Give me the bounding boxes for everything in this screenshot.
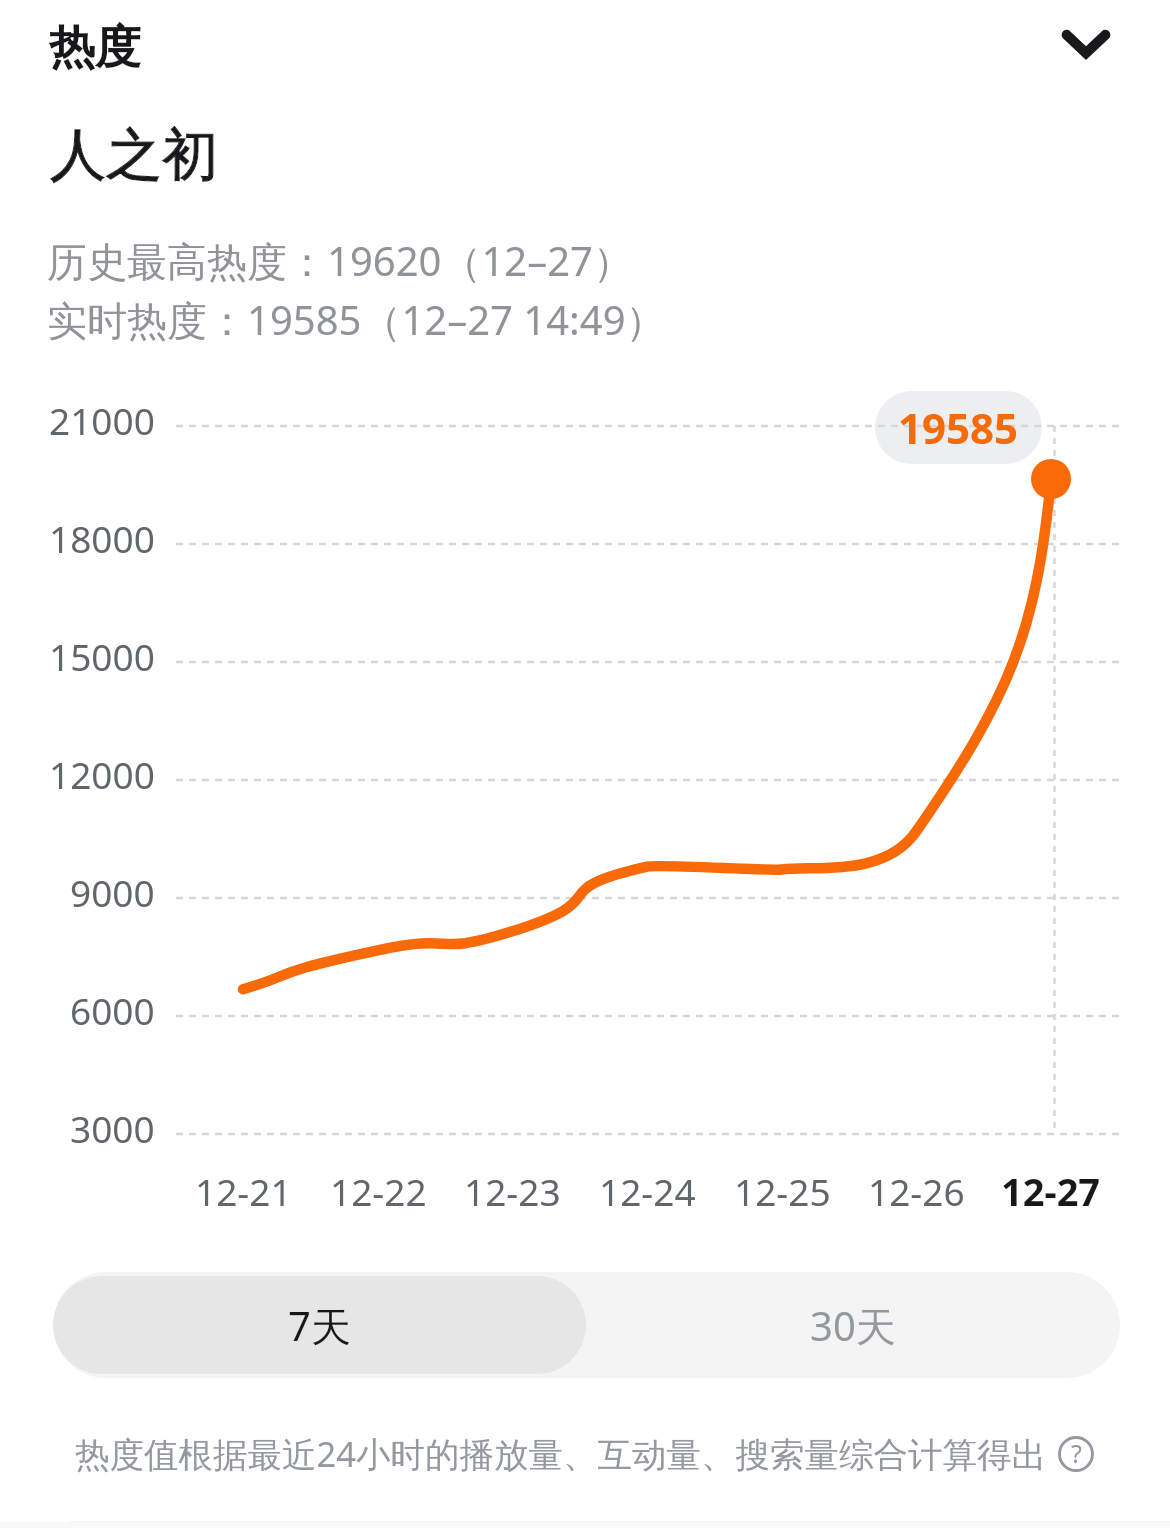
staticText: 18000	[49, 513, 155, 563]
staticText: 9000	[70, 867, 155, 917]
staticText: 人之初	[50, 120, 218, 191]
button[interactable]: 7天	[53, 1272, 586, 1378]
staticText: 历史最高热度：19620（12–27）	[47, 233, 633, 288]
button[interactable]: 30天	[586, 1272, 1120, 1378]
staticText: 30天	[810, 1298, 896, 1353]
staticText: 21000	[49, 395, 155, 445]
staticText: 6000	[70, 985, 155, 1035]
staticText: 12-25	[734, 1166, 831, 1216]
staticText: 12-23	[464, 1166, 561, 1216]
button[interactable]: Help	[1057, 1435, 1095, 1473]
staticText: 15000	[49, 631, 155, 681]
staticText: 12-21	[195, 1166, 292, 1216]
staticText: 7天	[288, 1298, 351, 1353]
staticText: 12-26	[868, 1166, 965, 1216]
staticText: 热度	[49, 19, 141, 77]
staticText: 实时热度：19585（12–27 14:49）	[47, 292, 666, 347]
staticText: 12-22	[330, 1166, 427, 1216]
button[interactable]: Collapse	[1042, 0, 1130, 88]
staticText: 热度值根据最近24小时的播放量、互动量、搜索量综合计算得出	[75, 1430, 1046, 1477]
staticText: 12-24	[599, 1166, 696, 1216]
staticText: 12000	[49, 749, 155, 799]
staticText: ?	[1071, 1436, 1082, 1470]
staticText: 12-27	[1001, 1165, 1101, 1217]
staticText: 3000	[70, 1103, 155, 1153]
staticText: 人之初	[50, 120, 218, 191]
staticText: 19585	[898, 399, 1019, 456]
